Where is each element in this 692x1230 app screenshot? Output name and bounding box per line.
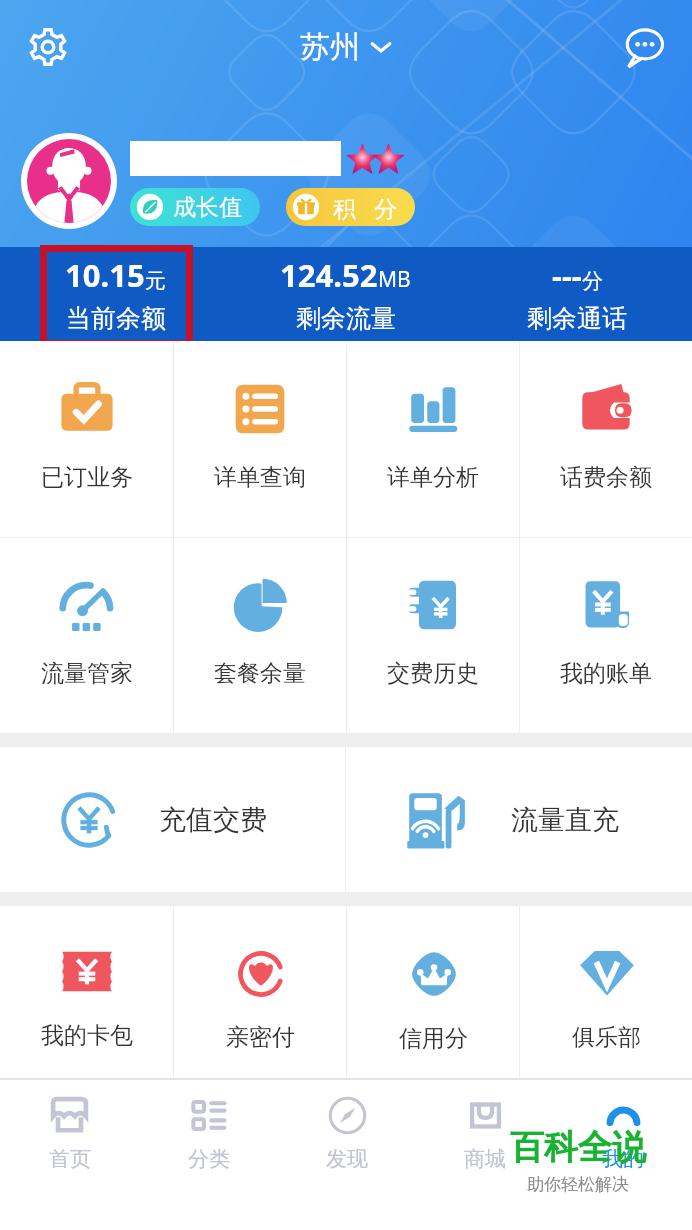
staticText: 充值交费 bbox=[159, 803, 267, 837]
staticText: 我的账单 bbox=[560, 659, 652, 688]
button[interactable]: 充值交费 bbox=[0, 747, 345, 892]
staticText: 我的 bbox=[602, 1146, 644, 1172]
staticText: 俱乐部 bbox=[572, 1023, 641, 1052]
button[interactable]: 首页 bbox=[0, 1080, 139, 1187]
staticText: 详单分析 bbox=[387, 463, 479, 492]
staticText: 积 分 bbox=[333, 192, 397, 223]
staticText: 亲密付 bbox=[226, 1023, 295, 1052]
button[interactable]: 成长值 bbox=[130, 188, 260, 226]
button[interactable]: 流量管家 bbox=[0, 538, 173, 733]
staticText: 交费历史 bbox=[387, 659, 479, 688]
button[interactable]: 已订业务 bbox=[0, 341, 173, 537]
button[interactable]: 交费历史 bbox=[347, 538, 519, 733]
button[interactable]: 详单查询 bbox=[174, 341, 346, 537]
staticText: 成长值 bbox=[173, 193, 242, 222]
staticText: 套餐余量 bbox=[214, 659, 306, 688]
staticText: 苏州 bbox=[300, 28, 360, 66]
button[interactable]: 话费余额 bbox=[520, 341, 692, 537]
button[interactable]: 积 分 bbox=[286, 188, 415, 226]
button[interactable]: 流量直充 bbox=[346, 747, 692, 892]
button[interactable]: 详单分析 bbox=[347, 341, 519, 537]
staticText: 分 bbox=[582, 268, 603, 294]
button[interactable]: 我的 bbox=[554, 1080, 692, 1187]
button[interactable]: 俱乐部 bbox=[520, 906, 692, 1078]
staticText: MB bbox=[378, 265, 411, 294]
staticText: 详单查询 bbox=[214, 463, 306, 492]
button[interactable]: 我的账单 bbox=[520, 538, 692, 733]
button[interactable]: 我的卡包 bbox=[0, 906, 173, 1078]
staticText: 助你轻松解决 bbox=[527, 1174, 629, 1195]
staticText: 我的卡包 bbox=[41, 1021, 133, 1050]
button[interactable]: 套餐余量 bbox=[174, 538, 346, 733]
button[interactable]: 亲密付 bbox=[174, 906, 346, 1078]
button[interactable]: 分类 bbox=[139, 1080, 278, 1187]
button[interactable]: Messages bbox=[618, 21, 670, 73]
staticText: 10.15 bbox=[65, 254, 145, 296]
staticText: 百科全说 bbox=[510, 1126, 646, 1169]
button[interactable]: 发现 bbox=[278, 1080, 416, 1187]
staticText: 话费余额 bbox=[560, 463, 652, 492]
button[interactable]: 信用分 bbox=[347, 906, 519, 1078]
button[interactable]: 124.52 bbox=[280, 247, 411, 341]
staticText: 当前余额 bbox=[66, 303, 166, 334]
button[interactable]: Settings bbox=[22, 21, 74, 73]
staticText: 分类 bbox=[188, 1146, 230, 1172]
staticText: 元 bbox=[145, 268, 166, 294]
staticText: 信用分 bbox=[399, 1024, 468, 1053]
staticText: 124.52 bbox=[280, 254, 378, 296]
button[interactable]: --- bbox=[527, 247, 627, 341]
staticText: 剩余通话 bbox=[527, 303, 627, 334]
button[interactable]: 苏州 bbox=[300, 28, 392, 66]
staticText: 发现 bbox=[326, 1146, 368, 1172]
staticText: 流量直充 bbox=[511, 803, 619, 837]
staticText: 流量管家 bbox=[41, 659, 133, 688]
staticText: 已订业务 bbox=[41, 463, 133, 492]
staticText: --- bbox=[552, 254, 582, 296]
button[interactable]: 10.15 bbox=[65, 247, 166, 341]
staticText: 商城 bbox=[464, 1146, 506, 1172]
staticText: 首页 bbox=[49, 1146, 91, 1172]
staticText: 剩余流量 bbox=[296, 303, 396, 334]
button[interactable]: 商城 bbox=[416, 1080, 554, 1187]
